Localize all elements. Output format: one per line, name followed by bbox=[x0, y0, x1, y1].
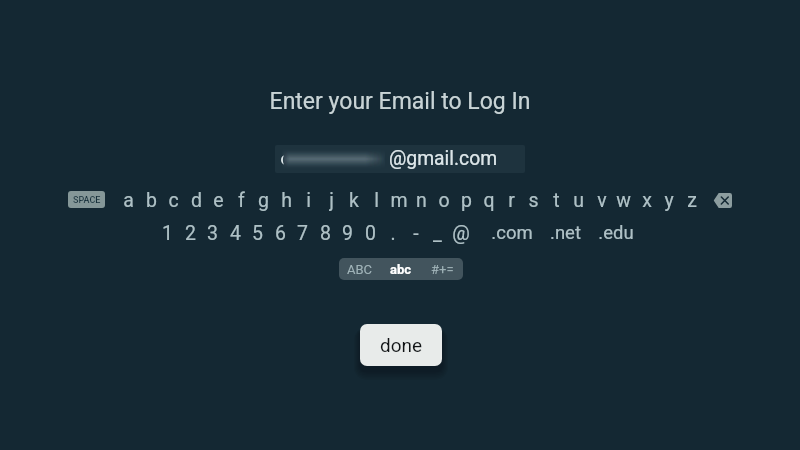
staticText: h bbox=[281, 189, 292, 211]
button[interactable]: p bbox=[455, 189, 478, 211]
staticText: _ bbox=[433, 222, 442, 244]
button[interactable]: m bbox=[387, 189, 410, 211]
button[interactable]: s bbox=[522, 189, 545, 211]
button[interactable]: .edu bbox=[593, 222, 639, 244]
staticText: 5 bbox=[252, 222, 263, 244]
button[interactable]: h bbox=[275, 189, 298, 211]
staticText: c bbox=[168, 189, 179, 211]
button[interactable]: @ bbox=[449, 222, 472, 244]
staticText: b bbox=[146, 189, 157, 211]
staticText: #+= bbox=[431, 262, 454, 277]
button[interactable]: 1 bbox=[156, 222, 179, 244]
button[interactable]: c bbox=[162, 189, 185, 211]
button[interactable]: 8 bbox=[314, 222, 337, 244]
staticText: e bbox=[213, 189, 224, 211]
staticText: z bbox=[687, 189, 697, 211]
staticText: .net bbox=[550, 222, 581, 244]
staticText: .edu bbox=[598, 222, 634, 244]
button[interactable]: t bbox=[545, 189, 568, 211]
staticText: 1 bbox=[162, 222, 173, 244]
button[interactable]: z bbox=[680, 189, 703, 211]
button[interactable]: - bbox=[404, 222, 427, 244]
staticText: w bbox=[616, 189, 631, 211]
button[interactable]: u bbox=[567, 189, 590, 211]
button[interactable]: e bbox=[207, 189, 230, 211]
staticText: v bbox=[597, 189, 607, 211]
staticText: 0 bbox=[365, 222, 376, 244]
button[interactable]: q bbox=[477, 189, 500, 211]
staticText: @gmail.com bbox=[389, 147, 498, 170]
button[interactable]: done bbox=[360, 324, 442, 366]
staticText: t bbox=[553, 189, 560, 211]
staticText: SPACE bbox=[73, 195, 101, 206]
staticText: i bbox=[306, 189, 311, 211]
button[interactable]: v bbox=[590, 189, 613, 211]
staticText: n bbox=[416, 189, 427, 211]
staticText: 4 bbox=[230, 222, 241, 244]
button[interactable]: #+= bbox=[421, 258, 463, 280]
button[interactable]: abc bbox=[381, 258, 421, 280]
button[interactable]: l bbox=[365, 189, 388, 211]
staticText: done bbox=[380, 334, 423, 356]
button[interactable]: o bbox=[432, 189, 455, 211]
button[interactable]: 7 bbox=[291, 222, 314, 244]
staticText: 2 bbox=[185, 222, 196, 244]
staticText: l bbox=[374, 189, 379, 211]
button[interactable]: Backspace bbox=[711, 191, 733, 209]
button[interactable]: .com bbox=[488, 222, 536, 244]
button[interactable]: b bbox=[140, 189, 163, 211]
staticText: s bbox=[528, 189, 539, 211]
staticText: g bbox=[258, 189, 269, 211]
button[interactable]: 4 bbox=[224, 222, 247, 244]
staticText: 7 bbox=[297, 222, 308, 244]
button[interactable]: 0 bbox=[359, 222, 382, 244]
button[interactable]: 2 bbox=[179, 222, 202, 244]
staticText: r bbox=[508, 189, 515, 211]
staticText: 8 bbox=[320, 222, 331, 244]
staticText: abc bbox=[390, 262, 412, 277]
button[interactable]: Email address field bbox=[275, 145, 525, 173]
button[interactable]: d bbox=[185, 189, 208, 211]
staticText: x bbox=[642, 189, 652, 211]
button[interactable]: .net bbox=[543, 222, 587, 244]
staticText: f bbox=[238, 189, 245, 211]
staticText: q bbox=[483, 189, 495, 211]
button[interactable]: 3 bbox=[201, 222, 224, 244]
staticText: d bbox=[191, 189, 202, 211]
button[interactable]: k bbox=[342, 189, 365, 211]
button[interactable]: a bbox=[117, 189, 140, 211]
staticText: .com bbox=[491, 222, 533, 244]
staticText: 9 bbox=[342, 222, 353, 244]
staticText: 6 bbox=[275, 222, 286, 244]
staticText: o bbox=[438, 189, 450, 211]
button[interactable]: j bbox=[320, 189, 343, 211]
staticText: k bbox=[349, 189, 359, 211]
staticText: Enter your Email to Log In bbox=[0, 88, 800, 115]
staticText: - bbox=[413, 222, 419, 244]
button[interactable]: x bbox=[635, 189, 658, 211]
button[interactable]: ABC bbox=[339, 258, 381, 280]
button[interactable]: g bbox=[252, 189, 275, 211]
staticText: . bbox=[390, 222, 396, 244]
staticText: m bbox=[390, 189, 408, 211]
button[interactable]: _ bbox=[426, 222, 449, 244]
button[interactable]: n bbox=[410, 189, 433, 211]
button[interactable]: r bbox=[500, 189, 523, 211]
staticText: 3 bbox=[207, 222, 218, 244]
button[interactable]: 9 bbox=[336, 222, 359, 244]
staticText: u bbox=[573, 189, 584, 211]
button[interactable]: y bbox=[657, 189, 680, 211]
staticText: p bbox=[461, 189, 472, 211]
button[interactable]: w bbox=[612, 189, 635, 211]
button[interactable]: 6 bbox=[269, 222, 292, 244]
staticText: j bbox=[329, 189, 334, 211]
staticText: @ bbox=[452, 222, 470, 244]
staticText: y bbox=[664, 189, 674, 211]
button[interactable]: 5 bbox=[246, 222, 269, 244]
button[interactable]: i bbox=[297, 189, 320, 211]
button[interactable]: f bbox=[230, 189, 253, 211]
button[interactable]: . bbox=[381, 222, 404, 244]
button[interactable]: SPACE bbox=[68, 191, 105, 208]
staticText: ABC bbox=[347, 262, 373, 277]
staticText: a bbox=[123, 189, 134, 211]
